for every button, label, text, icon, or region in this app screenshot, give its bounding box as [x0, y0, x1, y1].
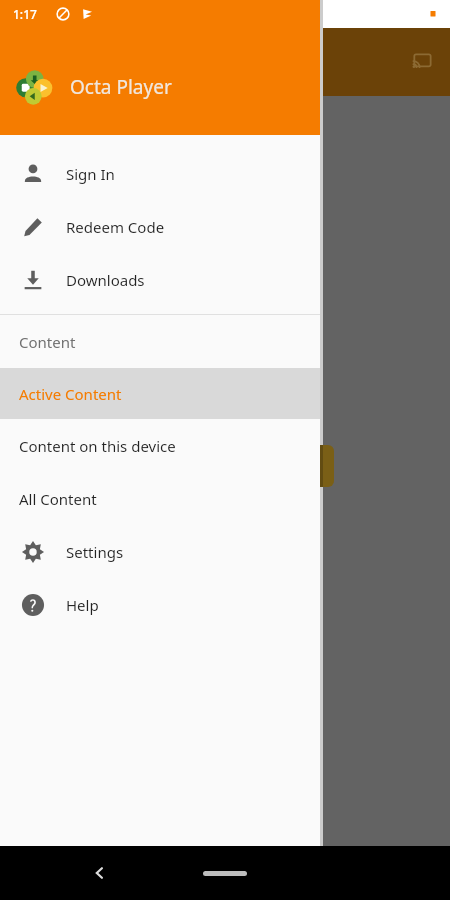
staticText: Settings	[66, 542, 124, 562]
button[interactable]: Active Content	[0, 368, 320, 419]
staticText: Octa Player	[70, 74, 172, 100]
staticText: Active Content	[19, 384, 122, 404]
button[interactable]: Home	[203, 871, 247, 876]
button[interactable]: Settings	[0, 525, 320, 578]
button[interactable]: Sign In	[0, 147, 320, 200]
button[interactable]: All Content	[0, 472, 320, 525]
button[interactable]: Content on this device	[0, 419, 320, 472]
button[interactable]: Redeem Code	[0, 200, 320, 253]
staticText: 1:17	[13, 6, 37, 22]
staticText: Redeem Code	[66, 217, 165, 237]
button[interactable]: Back	[82, 855, 118, 891]
staticText: Content on this device	[19, 436, 176, 456]
staticText: Help	[66, 595, 99, 615]
button[interactable]: Downloads	[0, 253, 320, 306]
staticText: Content	[19, 332, 76, 352]
staticText: Downloads	[66, 270, 145, 290]
staticText: Sign In	[66, 164, 115, 184]
button[interactable]: Help	[0, 578, 320, 631]
button[interactable]: Cast	[400, 40, 444, 84]
staticText: All Content	[19, 489, 97, 509]
